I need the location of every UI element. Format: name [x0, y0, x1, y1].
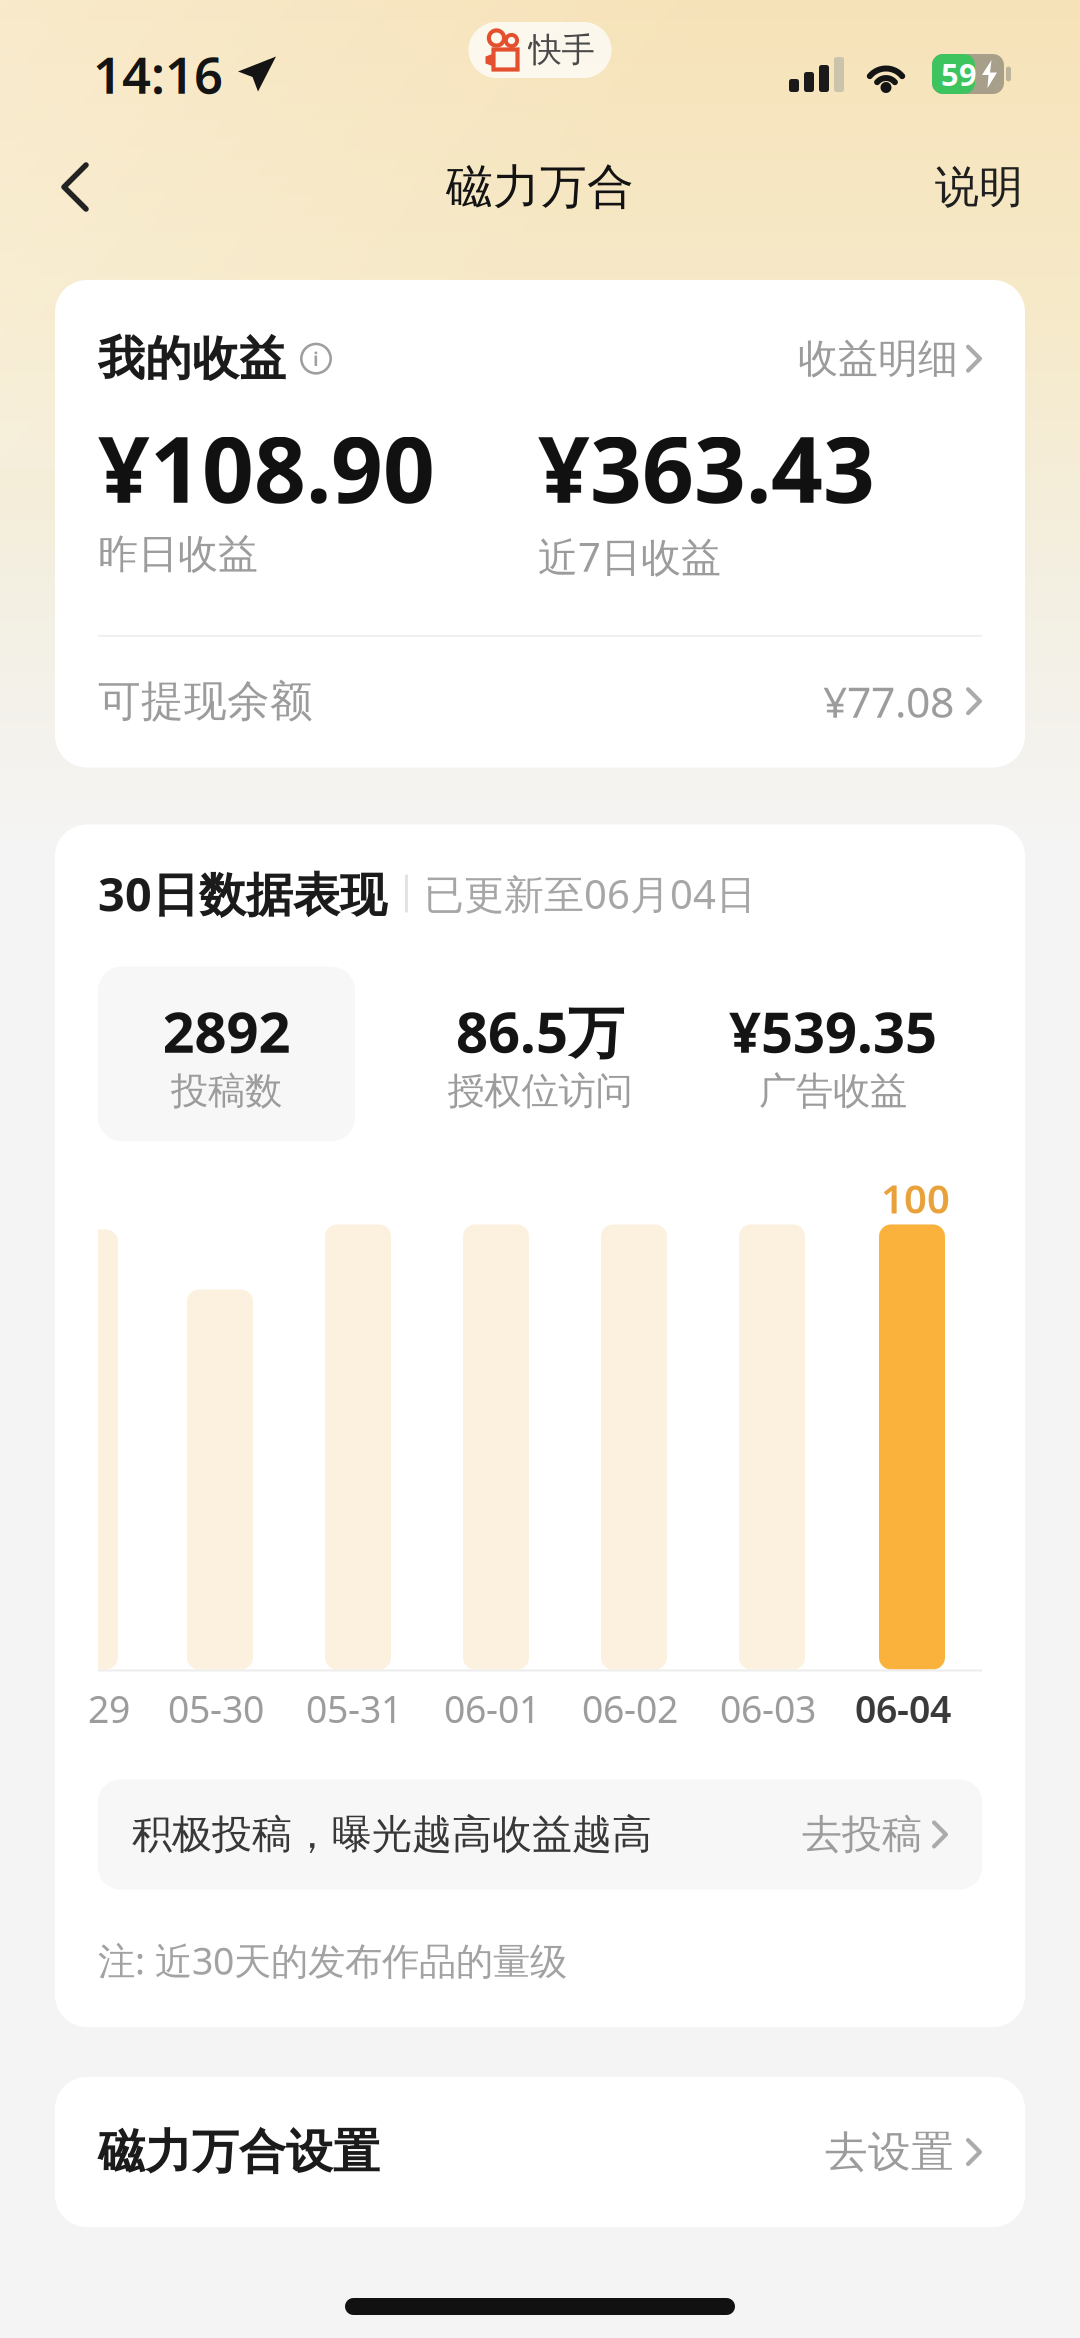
staticText: 14:16	[93, 40, 223, 108]
button[interactable]: 返回	[0, 145, 92, 229]
staticText: 投稿数	[171, 1068, 282, 1114]
staticText: 59	[941, 54, 977, 94]
staticText: 已更新至06月04日	[424, 867, 756, 920]
button[interactable]: 可提现余额	[98, 637, 982, 767]
staticText: 去设置	[825, 2126, 954, 2178]
staticText: 积极投稿，曝光越高收益越高	[132, 1810, 652, 1859]
staticText: 快手	[528, 29, 594, 70]
staticText: 收益明细	[798, 334, 958, 383]
staticText: 昨日收益	[98, 530, 258, 579]
staticText: 2892	[162, 994, 290, 1068]
staticText: ¥539.35	[729, 994, 937, 1068]
staticText: 05-30	[168, 1684, 264, 1733]
staticText: 30日数据表现	[98, 862, 387, 924]
button[interactable]: 说明	[935, 160, 1080, 214]
staticText: ¥77.08	[823, 673, 954, 729]
staticText: 近7日收益	[538, 530, 721, 583]
button[interactable]: 积极投稿，曝光越高收益越高	[98, 1779, 982, 1889]
button[interactable]: 收益明细	[798, 334, 982, 383]
staticText: ¥363.43	[538, 407, 875, 528]
staticText: 可提现余额	[98, 675, 313, 727]
staticText: 86.5万	[456, 994, 624, 1068]
staticText: 29	[88, 1684, 130, 1733]
staticText: 06-03	[720, 1684, 816, 1733]
staticText: 广告收益	[759, 1068, 907, 1114]
staticText: 授权位访问	[447, 1068, 632, 1114]
staticText: 我的收益	[98, 330, 286, 387]
staticText: ¥108.90	[98, 407, 435, 528]
button[interactable]: 磁力万合设置	[55, 2077, 1025, 2227]
staticText: i	[313, 345, 319, 372]
staticText: 100	[881, 1171, 950, 1224]
button[interactable]: 86.5万	[415, 966, 665, 1141]
staticText: 06-02	[582, 1684, 678, 1733]
staticText: 注: 近30天的发布作品的量级	[98, 1935, 567, 1985]
button[interactable]: 2892	[98, 966, 355, 1141]
staticText: 05-31	[306, 1684, 402, 1733]
button[interactable]: ¥539.35	[708, 966, 958, 1141]
staticText: 磁力万合	[446, 158, 634, 216]
staticText: 磁力万合设置	[98, 2123, 380, 2181]
staticText: 说明	[935, 160, 1023, 214]
staticText: 去投稿	[802, 1810, 922, 1859]
staticText: 06-01	[444, 1684, 540, 1733]
staticText: 06-04	[855, 1684, 951, 1733]
